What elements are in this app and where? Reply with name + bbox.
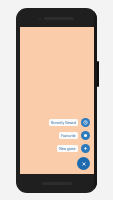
button[interactable]: Recently Viewed <box>49 118 90 127</box>
button[interactable]: New game <box>57 144 90 153</box>
button[interactable]: Close menu <box>77 157 90 170</box>
staticText: Recently Viewed <box>51 121 76 125</box>
button[interactable]: Favourite <box>59 131 90 140</box>
staticText: New game <box>59 147 76 151</box>
staticText: Favourite <box>61 134 76 138</box>
